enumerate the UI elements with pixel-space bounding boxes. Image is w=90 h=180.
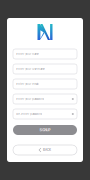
staticText: SIGNUP: [39, 128, 50, 132]
button[interactable]: Enter your username: [13, 64, 77, 74]
button[interactable]: SIGNUP: [13, 125, 77, 135]
staticText: Enter your name: [16, 52, 39, 56]
button[interactable]: Re-enter password: [13, 109, 77, 119]
staticText: Enter your username: [16, 67, 45, 71]
button[interactable]: Enter your name: [13, 49, 77, 59]
staticText: Re-enter password: [16, 112, 42, 116]
staticText: BACK: [43, 148, 51, 152]
button[interactable]: Enter your email: [13, 79, 77, 89]
staticText: Enter your password: [16, 97, 44, 101]
button[interactable]: Enter your password: [13, 94, 77, 104]
staticText: Enter your email: [16, 82, 39, 86]
button[interactable]: BACK: [13, 145, 77, 155]
